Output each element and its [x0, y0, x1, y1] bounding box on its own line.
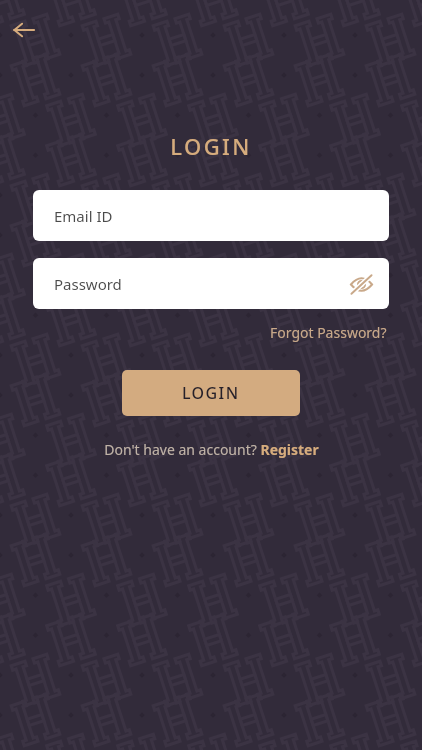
- staticText: Forgot Password?: [270, 323, 387, 342]
- staticText: Password: [54, 274, 341, 294]
- staticText: Don't have an account? Register: [104, 440, 319, 459]
- button[interactable]: LOGIN: [122, 370, 300, 416]
- button[interactable]: Don't have an account? Register: [100, 437, 323, 462]
- staticText: LOGIN: [182, 382, 240, 404]
- staticText: LOGIN: [170, 131, 252, 161]
- button[interactable]: Email ID: [33, 190, 389, 241]
- button[interactable]: Toggle password visibility: [341, 264, 381, 304]
- button[interactable]: Forgot Password?: [268, 320, 389, 345]
- staticText: Email ID: [54, 206, 381, 226]
- button[interactable]: Back: [0, 6, 48, 54]
- button[interactable]: Password: [33, 258, 389, 309]
